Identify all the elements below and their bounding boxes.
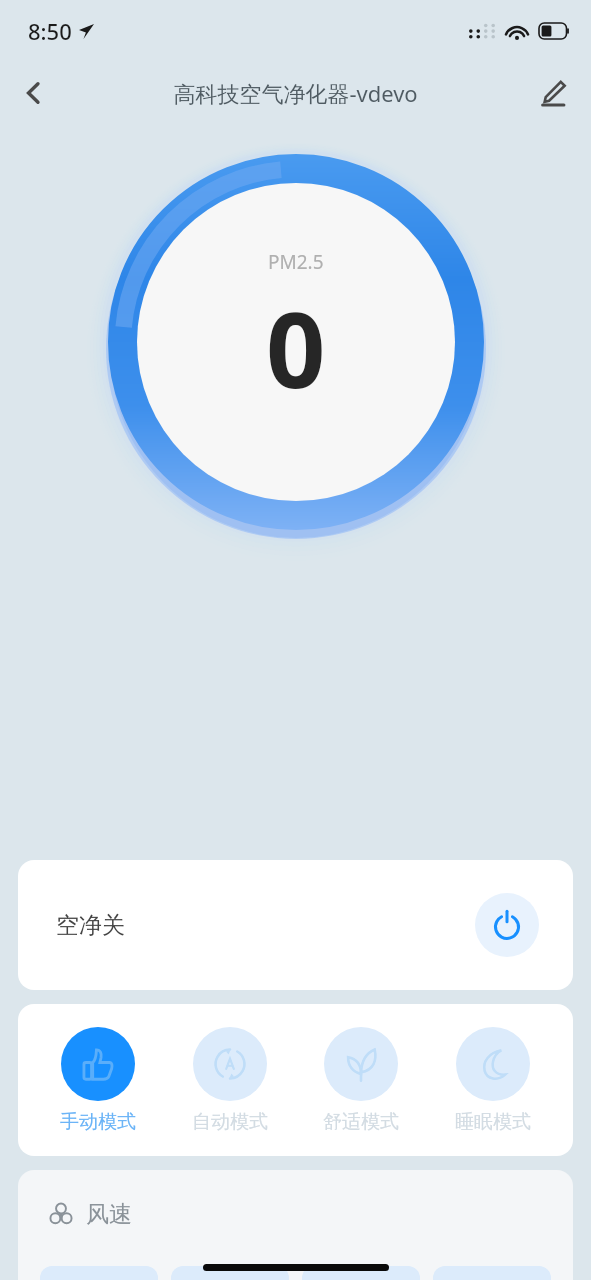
button[interactable]: 舒适模式 [299,1027,423,1134]
button[interactable]: 睡眠模式 [431,1027,555,1134]
staticText: 8:50 [28,16,72,46]
button[interactable]: Edit [527,67,579,119]
staticText: 空净关 [56,911,125,940]
staticText: 0 [266,277,326,419]
staticText: 高科技空气净化器-vdevo [173,78,418,108]
button[interactable] [302,1266,420,1280]
button[interactable] [40,1266,158,1280]
button[interactable] [171,1266,289,1280]
button[interactable]: Power [475,893,539,957]
button[interactable]: Back [8,67,60,119]
button[interactable]: 自动模式 [168,1027,292,1134]
button[interactable] [433,1266,551,1280]
staticText: 手动模式 [60,1110,136,1134]
staticText: 风速 [86,1200,132,1229]
button[interactable]: 手动模式 [36,1027,160,1134]
staticText: 睡眠模式 [455,1110,531,1134]
button[interactable]: 空净关 [18,860,573,990]
staticText: PM2.5 [268,249,324,275]
staticText: 自动模式 [192,1110,268,1134]
staticText: 舒适模式 [323,1110,399,1134]
